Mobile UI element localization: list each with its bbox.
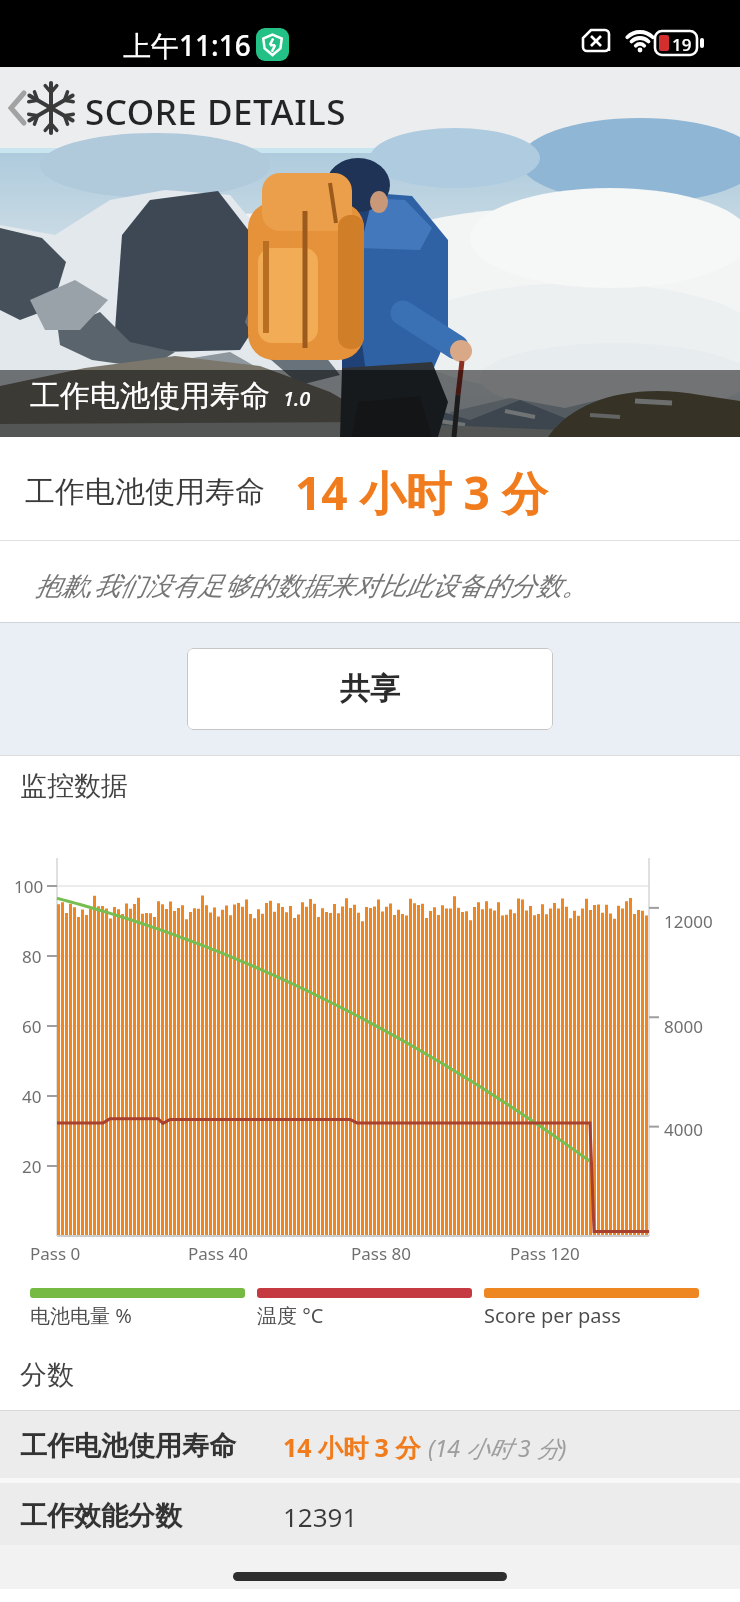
staticText: Pass 80 [351, 1242, 411, 1265]
staticText: 14 小时 3 分 [283, 1430, 421, 1464]
button[interactable]: 共享 [187, 648, 553, 730]
staticText: 工作电池使用寿命 [30, 377, 270, 415]
staticText: 工作效能分数 [20, 1499, 182, 1533]
staticText: 抱歉,我们没有足够的数据来对比此设备的分数。 [35, 567, 588, 603]
staticText: 14 小时 3 分 [295, 461, 548, 524]
staticText: 60 [22, 1015, 42, 1038]
staticText: 12391 [283, 1499, 358, 1534]
staticText: 19 [672, 33, 692, 56]
staticText: 80 [22, 945, 42, 968]
staticText: 共享 [340, 670, 400, 708]
staticText: Pass 40 [188, 1242, 248, 1265]
button[interactable]: 工作效能分数 [0, 1483, 740, 1545]
staticText: 电池电量 % [30, 1302, 132, 1329]
button[interactable]: SCORE DETAILS [0, 67, 740, 148]
staticText: Score per pass [484, 1302, 621, 1329]
staticText: 分数 [20, 1358, 74, 1392]
staticText: 100 [14, 875, 44, 898]
staticText: Pass 120 [510, 1242, 580, 1265]
staticText: Pass 0 [30, 1242, 81, 1265]
staticText: 40 [22, 1085, 42, 1108]
staticText: 上午11:16 [123, 26, 251, 64]
staticText: 12000 [664, 910, 713, 933]
staticText: 温度 °C [257, 1302, 324, 1329]
staticText: SCORE DETAILS [85, 88, 346, 136]
staticText: 4000 [664, 1118, 703, 1141]
staticText: 工作电池使用寿命 [20, 1429, 236, 1463]
staticText: (14 小时 3 分) [428, 1432, 567, 1463]
staticText: 8000 [664, 1015, 703, 1038]
staticText: 1.0 [283, 385, 311, 412]
button[interactable]: 工作电池使用寿命 [0, 1411, 740, 1478]
staticText: 20 [22, 1155, 42, 1178]
staticText: 监控数据 [20, 769, 128, 803]
staticText: 工作电池使用寿命 [25, 473, 265, 511]
